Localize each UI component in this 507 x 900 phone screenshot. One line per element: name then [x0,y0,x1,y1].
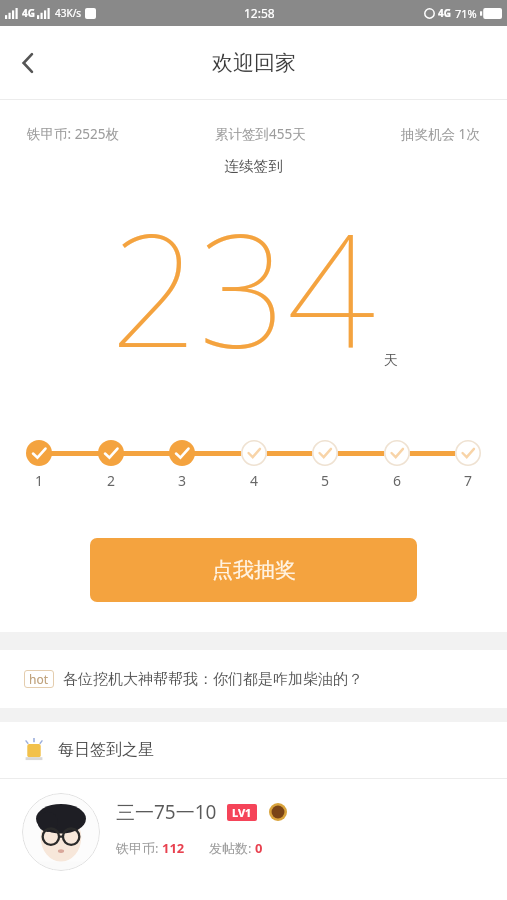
staticText: 抽奖机会 1次 [401,125,480,143]
staticText: 0 [255,839,263,857]
staticText: 4 [250,471,259,490]
button[interactable]: Day 2 [98,440,124,466]
staticText: 5 [321,471,330,490]
staticText: LV1 [232,805,252,820]
staticText: 连续签到 [0,157,507,175]
button[interactable]: Day 6 [384,440,410,466]
staticText: hot [29,671,49,687]
button[interactable]: Day 1 [26,440,52,466]
staticText: 43K/s [55,6,82,20]
staticText: 铁甲币: 2525枚 [27,125,120,143]
button[interactable]: 三一75一10 [0,779,507,871]
staticText: 7 [464,471,473,490]
staticText: 3 [178,471,187,490]
staticText: 71% [455,6,477,21]
staticText: 天 [384,352,398,370]
button[interactable]: Day 7 [455,440,481,466]
staticText: 234 [110,181,376,392]
staticText: 112 [162,839,185,857]
staticText: 发帖数: [209,839,255,857]
staticText: 6 [393,471,402,490]
staticText: 三一75一10 [116,799,217,825]
staticText: 累计签到455天 [215,125,306,143]
button[interactable]: Day 4 [241,440,267,466]
button[interactable]: 点我抽奖 [90,538,417,602]
staticText: 点我抽奖 [212,557,296,583]
button[interactable]: Day 3 [169,440,195,466]
button[interactable]: Day 5 [312,440,338,466]
staticText: 每日签到之星 [58,740,154,760]
staticText: 12:58 [244,5,275,21]
staticText: 1 [35,471,44,490]
button[interactable]: Back [0,35,56,91]
staticText: 4G [22,6,35,20]
staticText: 2 [107,471,116,490]
staticText: 铁甲币: [116,839,162,857]
staticText: 各位挖机大神帮帮我：你们都是咋加柴油的？ [63,670,363,689]
staticText: 4G [438,6,451,20]
staticText: 欢迎回家 [212,50,296,76]
button[interactable]: hot [0,650,507,708]
